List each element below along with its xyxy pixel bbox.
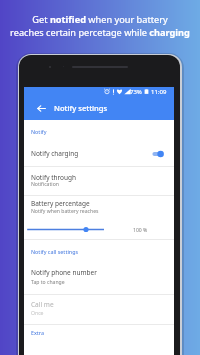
staticText: Call me: [31, 300, 54, 309]
button[interactable]: Notify charging toggle: [148, 147, 170, 161]
staticText: Get notified when your battery: [32, 13, 168, 26]
button[interactable]: Extra: [24, 326, 174, 339]
staticText: Battery percentage: [31, 199, 90, 208]
staticText: reaches certain percetage while charging: [10, 26, 190, 39]
staticText: Notify settings: [54, 103, 108, 113]
staticText: Notify when battery reaches: [31, 208, 99, 215]
staticText: Notify phone number: [31, 268, 97, 277]
button[interactable]: 100 %: [24, 224, 174, 235]
staticText: Tap to change: [31, 279, 65, 286]
staticText: Notify: [31, 128, 47, 135]
button[interactable]: Notify call settings: [24, 245, 174, 258]
staticText: 73%: [130, 88, 142, 96]
button[interactable]: Notify: [24, 125, 174, 138]
staticText: Notify charging: [31, 149, 79, 158]
staticText: 100 %: [133, 227, 148, 234]
staticText: Notify through: [31, 173, 77, 182]
button[interactable]: Back: [29, 96, 53, 120]
staticText: 11:09: [151, 88, 167, 96]
staticText: Notify call settings: [31, 248, 79, 255]
staticText: Extra: [31, 329, 45, 336]
staticText: Notification: [31, 181, 59, 188]
staticText: Once: [31, 310, 44, 317]
